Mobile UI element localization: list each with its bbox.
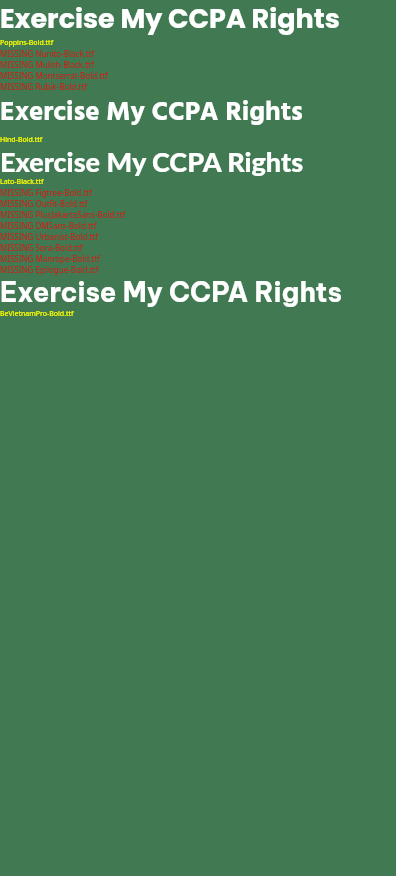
staticText: MISSING Montserrat-Bold.ttf xyxy=(0,70,108,81)
staticText: MISSING Rubik-Bold.ttf xyxy=(0,81,87,92)
staticText: MISSING Figtree-Bold.ttf xyxy=(0,187,92,198)
staticText: BeVietnamPro-Bold.ttf xyxy=(0,309,74,319)
staticText: MISSING Nunito-Black.ttf xyxy=(0,48,95,59)
staticText: Lato-Black.ttf xyxy=(0,177,44,187)
staticText: MISSING Outfit-Bold.ttf xyxy=(0,198,88,209)
staticText: MISSING Epilogue-Bold.ttf xyxy=(0,264,99,275)
staticText: Exercise My CCPA Rights xyxy=(0,275,342,309)
staticText: Poppins-Bold.ttf xyxy=(0,38,54,48)
staticText: MISSING DMSans-Bold.ttf xyxy=(0,220,97,231)
staticText: MISSING Urbanist-Bold.ttf xyxy=(0,231,99,242)
staticText: Exercise My CCPA Rights xyxy=(0,92,303,135)
staticText: MISSING Manrope-Bold.ttf xyxy=(0,253,100,264)
staticText: Exercise My CCPA Rights xyxy=(0,0,340,38)
staticText: Hind-Bold.ttf xyxy=(0,135,43,145)
staticText: MISSING Sora-Bold.ttf xyxy=(0,242,83,253)
staticText: MISSING Mulish-Black.ttf xyxy=(0,59,94,70)
staticText: Exercise My CCPA Rights xyxy=(0,145,304,177)
staticText: MISSING PlusJakartaSans-Bold.ttf xyxy=(0,209,126,220)
